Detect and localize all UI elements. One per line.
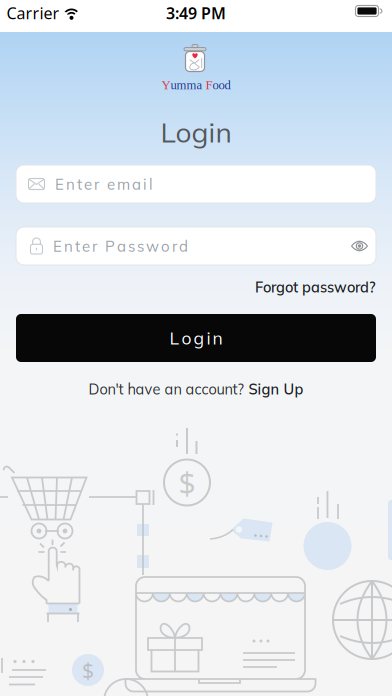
staticText: L o g i n xyxy=(169,327,222,349)
staticText: F xyxy=(205,78,212,92)
staticText: Login xyxy=(160,114,231,149)
button[interactable]: E n t e r e m a i l xyxy=(16,165,376,203)
button[interactable]: E n t e r P a s s w o r d xyxy=(16,227,376,265)
button[interactable]: L o g i n xyxy=(16,314,376,362)
staticText: E n t e r e m a i l xyxy=(55,175,153,193)
staticText: 3:49 PM xyxy=(166,2,226,24)
staticText: Sign Up xyxy=(248,380,303,398)
staticText: E n t e r P a s s w o r d xyxy=(53,237,188,255)
staticText: Carrier xyxy=(6,2,59,24)
staticText: Y xyxy=(161,78,170,92)
staticText: umma xyxy=(170,78,205,92)
button[interactable]: Forgot password? xyxy=(255,278,376,296)
button[interactable]: Sign Up xyxy=(248,380,303,398)
button[interactable]: Show password xyxy=(351,240,376,252)
staticText: $ xyxy=(178,462,195,503)
staticText: Forgot password? xyxy=(255,278,376,296)
staticText: Don't have an account? xyxy=(88,380,243,398)
staticText: $ xyxy=(82,656,94,684)
staticText: ood xyxy=(212,78,230,92)
